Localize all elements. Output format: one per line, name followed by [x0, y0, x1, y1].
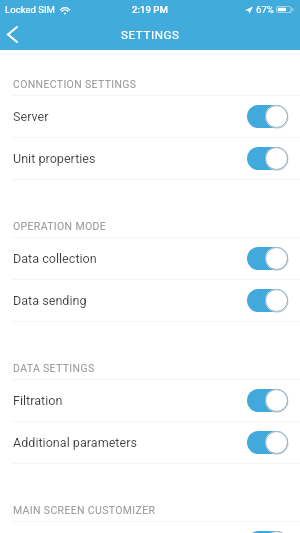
staticText: SETTINGS [121, 28, 180, 42]
button[interactable]: Filtration [0, 379, 300, 421]
button[interactable]: On [247, 247, 288, 270]
staticText: Data collection [13, 251, 97, 266]
staticText: 67% [256, 4, 274, 15]
staticText: Locked SIM [5, 4, 55, 15]
staticText: Unit properties [13, 151, 96, 166]
button[interactable]: On [247, 431, 288, 454]
staticText: 2:19 PM [132, 4, 168, 15]
button[interactable]: On [247, 147, 288, 170]
button[interactable]: Data sending [0, 279, 300, 321]
button[interactable]: On [247, 105, 288, 128]
button[interactable]: On [247, 389, 288, 412]
button[interactable]: Back [0, 18, 24, 50]
button[interactable]: On [247, 289, 288, 312]
button[interactable]: Data collection [0, 237, 300, 279]
button[interactable]: Server [0, 95, 300, 137]
button[interactable]: On [247, 531, 288, 533]
staticText: Data sending [13, 293, 87, 308]
staticText: CONNECTION SETTINGS [13, 78, 137, 90]
staticText: Filtration [13, 393, 63, 408]
staticText: MAIN SCREEN CUSTOMIZER [13, 504, 156, 516]
staticText: DATA SETTINGS [13, 362, 95, 374]
staticText: Additional parameters [13, 435, 137, 450]
staticText: Server [13, 109, 49, 124]
button[interactable]: Unit properties [0, 137, 300, 179]
button[interactable]: Auto scale [0, 521, 300, 533]
staticText: OPERATION MODE [13, 220, 107, 232]
button[interactable]: Additional parameters [0, 421, 300, 463]
